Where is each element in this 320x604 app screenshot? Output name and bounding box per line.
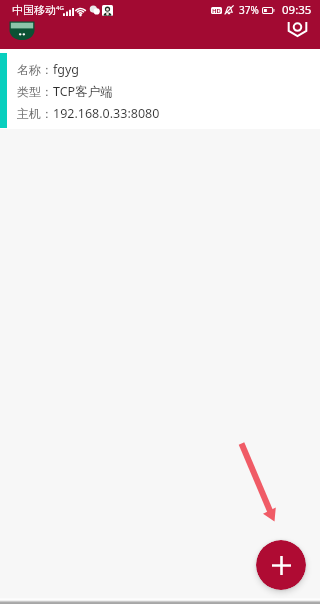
staticText: HD [212, 7, 221, 14]
staticText: 37% [239, 3, 259, 17]
staticText: 类型： [17, 84, 53, 99]
button[interactable]: App logo [7, 16, 37, 45]
staticText: TCP客户端 [53, 83, 113, 100]
staticText: 中国移动 [12, 3, 56, 17]
button[interactable]: Add connection [256, 540, 306, 590]
button[interactable]: 名称： [0, 49, 320, 129]
staticText: 4G [56, 4, 64, 12]
staticText: 名称： [17, 62, 53, 77]
button[interactable]: Security badge [284, 16, 310, 42]
staticText: fgyg [53, 61, 80, 78]
staticText: 192.168.0.33:8080 [53, 105, 160, 122]
staticText: 09:35 [282, 2, 312, 18]
staticText: 主机： [17, 106, 53, 121]
